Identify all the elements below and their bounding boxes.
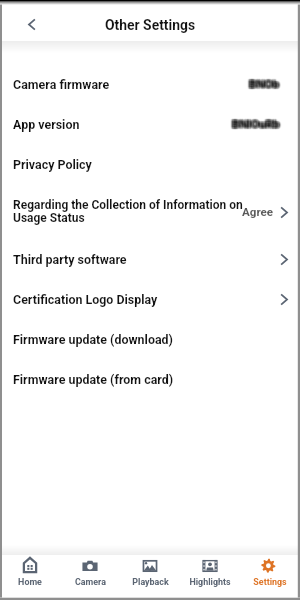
staticText: BNOb <box>251 76 282 90</box>
button[interactable]: Third party software <box>0 239 300 279</box>
staticText: BNIOuRb <box>231 118 279 132</box>
staticText: BNIOuRb <box>235 115 283 129</box>
button[interactable]: Certification Logo Display <box>0 279 300 319</box>
button[interactable]: Camera firmware <box>0 64 300 104</box>
staticText: BNIOuRb <box>232 118 280 132</box>
staticText: BNOb <box>252 76 283 90</box>
staticText: BNOb <box>249 76 280 90</box>
staticText: BNIOuRb <box>231 115 279 129</box>
staticText: BNIOuRb <box>234 118 282 132</box>
staticText: BNIOuRb <box>231 117 279 131</box>
staticText: BNIOuRb <box>233 116 281 130</box>
staticText: BNOb <box>247 75 278 89</box>
button[interactable]: Camera <box>60 555 120 600</box>
staticText: BNIOuRb <box>231 116 279 130</box>
button[interactable]: Privacy Policy <box>0 144 300 184</box>
staticText: BNOb <box>251 76 282 90</box>
button[interactable]: Firmware update (download) <box>0 319 300 359</box>
button[interactable]: Home <box>0 555 60 600</box>
staticText: BNOb <box>247 79 278 93</box>
staticText: BNIOuRb <box>233 118 281 132</box>
staticText: BNIOuRb <box>233 119 281 133</box>
staticText: BNIOuRb <box>233 115 281 129</box>
staticText: BNIOuRb <box>233 117 281 131</box>
staticText: BNOb <box>246 75 277 89</box>
staticText: BNIOuRb <box>230 118 278 132</box>
staticText: BNIOuRb <box>230 117 278 131</box>
staticText: Third party software <box>13 252 243 267</box>
staticText: BNOb <box>247 78 278 92</box>
staticText: BNIOuRb <box>230 118 278 132</box>
staticText: BNOb <box>246 78 277 92</box>
staticText: BNOb <box>250 77 281 91</box>
staticText: BNOb <box>248 77 279 91</box>
staticText: Firmware update (download) <box>13 332 243 347</box>
staticText: BNOb <box>249 78 280 92</box>
staticText: BNOb <box>248 76 279 90</box>
staticText: BNOb <box>247 77 278 91</box>
staticText: BNOb <box>248 79 279 93</box>
staticText: BNIOuRb <box>235 117 283 131</box>
staticText: BNOb <box>248 79 279 93</box>
staticText: BNIOuRb <box>229 118 277 132</box>
staticText: BNIOuRb <box>230 118 278 132</box>
staticText: BNOb <box>252 77 283 91</box>
staticText: BNIOuRb <box>230 118 278 132</box>
staticText: BNIOuRb <box>235 116 283 130</box>
staticText: BNOb <box>248 76 279 90</box>
staticText: BNIOuRb <box>234 116 282 130</box>
staticText: Camera firmware <box>13 77 243 92</box>
staticText: BNIOuRb <box>229 115 277 129</box>
staticText: BNIOuRb <box>231 116 279 130</box>
staticText: BNIOuRb <box>232 115 280 129</box>
button[interactable]: App version <box>0 104 300 144</box>
staticText: BNIOuRb <box>232 116 280 130</box>
staticText: BNIOuRb <box>229 116 277 130</box>
staticText: BNIOuRb <box>235 118 283 132</box>
staticText: BNIOuRb <box>233 115 281 129</box>
button[interactable]: Highlights <box>180 555 240 600</box>
staticText: BNIOuRb <box>234 116 282 130</box>
staticText: BNOb <box>248 78 279 92</box>
staticText: BNIOuRb <box>230 116 278 130</box>
staticText: BNIOuRb <box>231 119 279 133</box>
staticText: BNOb <box>250 78 281 92</box>
staticText: BNOb <box>248 75 279 89</box>
staticText: BNOb <box>247 79 278 93</box>
button[interactable]: Playback <box>120 555 180 600</box>
staticText: BNIOuRb <box>230 116 278 130</box>
staticText: BNOb <box>250 78 281 92</box>
staticText: BNIOuRb <box>230 115 278 129</box>
staticText: BNIOuRb <box>230 119 278 133</box>
staticText: BNIOuRb <box>229 119 277 133</box>
button[interactable]: Regarding the Collection of Information … <box>0 184 300 239</box>
staticText: BNIOuRb <box>234 116 282 130</box>
staticText: BNIOuRb <box>235 116 283 130</box>
staticText: BNOb <box>251 76 282 90</box>
staticText: BNOb <box>251 76 282 90</box>
button[interactable]: Firmware update (from card) <box>0 359 300 399</box>
staticText: BNOb <box>251 75 282 89</box>
staticText: BNOb <box>249 76 280 90</box>
staticText: BNOb <box>250 78 281 92</box>
staticText: BNOb <box>248 78 279 92</box>
button[interactable]: Back <box>15 8 48 41</box>
button[interactable]: Settings <box>240 555 300 600</box>
staticText: BNIOuRb <box>231 116 279 130</box>
staticText: BNIOuRb <box>231 118 279 132</box>
staticText: BNIOuRb <box>233 116 281 130</box>
staticText: BNIOuRb <box>230 116 278 130</box>
staticText: BNIOuRb <box>234 118 282 132</box>
staticText: BNIOuRb <box>233 116 281 130</box>
staticText: BNIOuRb <box>233 118 281 132</box>
staticText: Agree <box>242 205 274 219</box>
staticText: BNOb <box>251 77 282 91</box>
staticText: BNIOuRb <box>234 119 282 133</box>
staticText: BNOb <box>251 79 282 93</box>
staticText: BNIOuRb <box>233 116 281 130</box>
staticText: BNOb <box>247 76 278 90</box>
staticText: BNIOuRb <box>234 117 282 131</box>
staticText: BNOb <box>248 77 279 91</box>
staticText: BNOb <box>247 77 278 91</box>
staticText: BNOb <box>247 76 278 90</box>
